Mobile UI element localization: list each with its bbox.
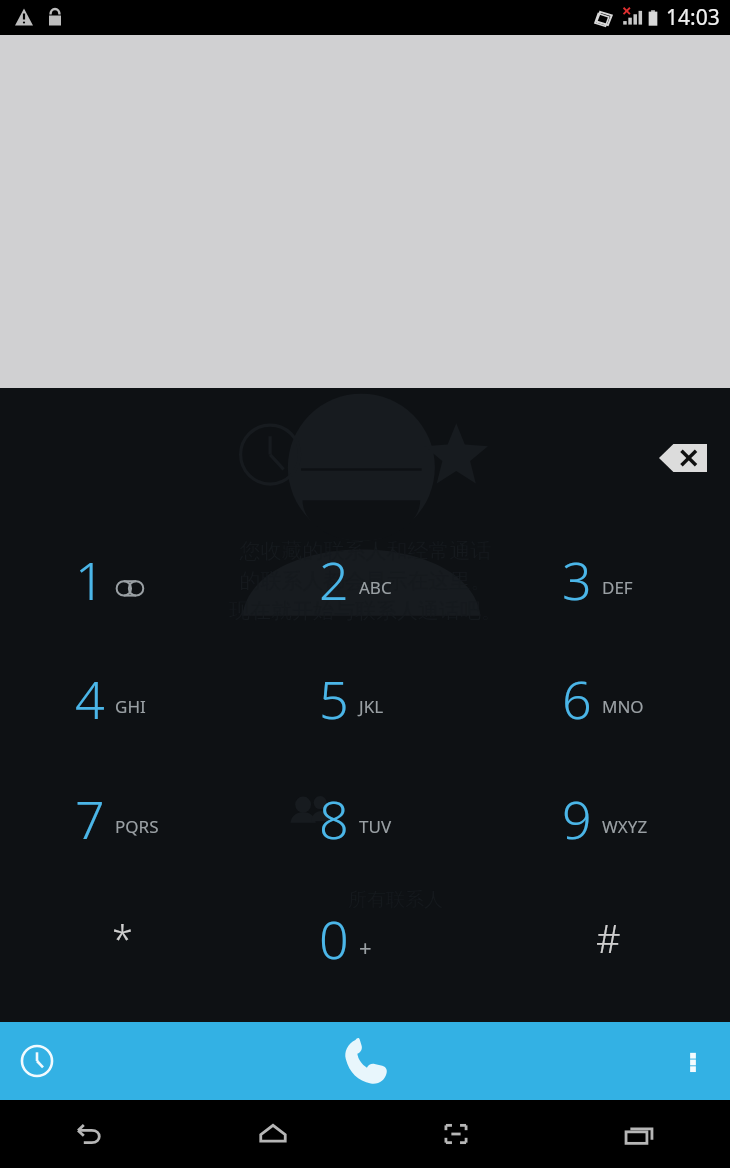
staticText: 0 bbox=[319, 903, 349, 974]
staticText: ABC bbox=[359, 576, 392, 599]
staticText: GHI bbox=[115, 695, 146, 718]
button[interactable]: 9 bbox=[487, 758, 730, 878]
staticText: MNO bbox=[602, 695, 644, 718]
button[interactable]: Dial bbox=[329, 1025, 401, 1097]
staticText: + bbox=[359, 932, 372, 962]
button[interactable]: More options bbox=[664, 1032, 722, 1090]
staticText: 9 bbox=[562, 783, 592, 854]
staticText: * bbox=[112, 912, 133, 964]
staticText: PQRS bbox=[115, 815, 159, 838]
button[interactable]: * bbox=[0, 878, 244, 998]
button[interactable]: Backspace bbox=[655, 436, 711, 480]
staticText: 您收藏的联系人和经常通话 的联系人都会显示在这里。 现在就开始与联系人通话吧。 bbox=[229, 538, 502, 625]
staticText: 7 bbox=[75, 783, 105, 854]
button[interactable]: 0 bbox=[244, 878, 487, 998]
staticText: DEF bbox=[602, 576, 633, 599]
staticText: 5 bbox=[319, 663, 349, 734]
button[interactable]: 4 bbox=[0, 639, 244, 758]
staticText: WXYZ bbox=[602, 815, 648, 838]
button[interactable]: Back bbox=[0, 1100, 182, 1168]
button[interactable]: Recents bbox=[547, 1100, 730, 1168]
staticText: 8 bbox=[319, 783, 349, 854]
staticText: 4 bbox=[75, 663, 105, 734]
staticText: JKL bbox=[359, 695, 384, 718]
button[interactable]: 2 bbox=[244, 520, 487, 639]
staticText: 3 bbox=[562, 544, 592, 615]
staticText: TUV bbox=[359, 815, 392, 838]
button[interactable]: 8 bbox=[244, 758, 487, 878]
button[interactable]: # bbox=[487, 878, 730, 998]
button[interactable]: 6 bbox=[487, 639, 730, 758]
staticText: 2 bbox=[319, 544, 349, 615]
staticText: 6 bbox=[562, 663, 592, 734]
staticText: # bbox=[596, 912, 621, 964]
button[interactable]: 3 bbox=[487, 520, 730, 639]
button[interactable]: 1 bbox=[0, 520, 244, 639]
button[interactable]: 7 bbox=[0, 758, 244, 878]
button[interactable]: Home bbox=[182, 1100, 364, 1168]
staticText: 14:03 bbox=[666, 3, 720, 32]
button[interactable]: Call history bbox=[8, 1032, 66, 1090]
button[interactable]: 5 bbox=[244, 639, 487, 758]
staticText: 1 bbox=[75, 544, 105, 615]
button[interactable]: Screenshot bbox=[364, 1100, 547, 1168]
